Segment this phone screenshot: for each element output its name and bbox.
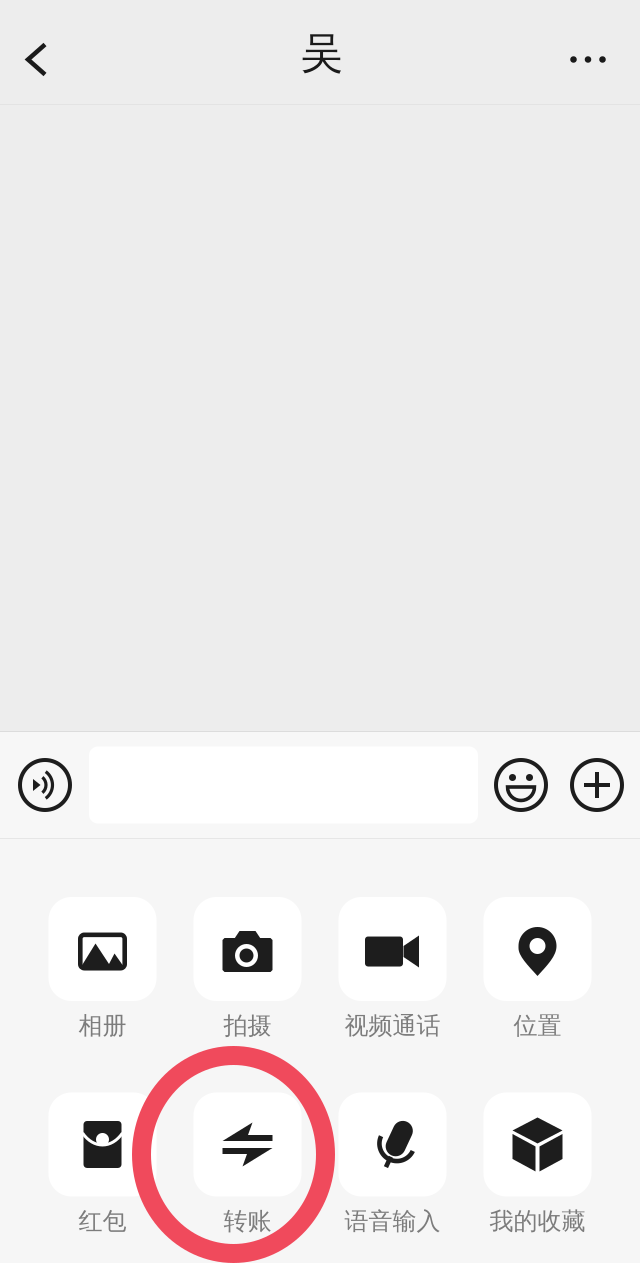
button[interactable]: 语音输入	[320, 1092, 465, 1236]
staticText: 我的收藏	[489, 1206, 585, 1236]
staticText: 吴	[300, 27, 343, 80]
staticText: 语音输入	[344, 1206, 440, 1236]
staticText: 红包	[78, 1206, 126, 1236]
button[interactable]: Hold to talk	[12, 732, 78, 838]
button[interactable]: 转账	[175, 1092, 320, 1236]
button[interactable]: 我的收藏	[465, 1092, 610, 1236]
button[interactable]: 视频通话	[320, 897, 465, 1040]
button[interactable]: 相册	[30, 897, 175, 1040]
button[interactable]: 拍摄	[175, 897, 320, 1040]
button[interactable]: 位置	[465, 897, 610, 1040]
staticText: 视频通话	[344, 1011, 440, 1040]
staticText: 相册	[78, 1011, 126, 1040]
button[interactable]: Back	[0, 20, 73, 98]
button[interactable]: More	[536, 20, 640, 98]
button[interactable]: 红包	[30, 1092, 175, 1236]
staticText: 位置	[513, 1011, 561, 1040]
staticText: 拍摄	[223, 1011, 271, 1040]
button[interactable]: More functions	[570, 732, 624, 838]
button[interactable]: Emoji	[494, 732, 548, 838]
staticText: 转账	[223, 1206, 271, 1236]
